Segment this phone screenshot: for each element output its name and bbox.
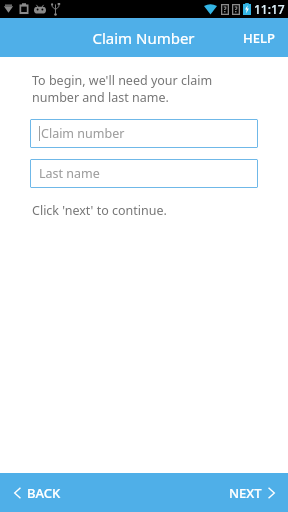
staticText: Last name — [39, 165, 100, 182]
button[interactable]: Claim number — [30, 119, 258, 148]
staticText: HELP — [243, 29, 275, 47]
staticText: BACK — [27, 484, 61, 502]
staticText: Claim Number — [92, 28, 195, 48]
button[interactable]: BACK — [0, 475, 75, 511]
staticText: Claim number — [41, 125, 125, 142]
staticText: 11:17 — [254, 1, 285, 17]
staticText: Click 'next' to continue. — [32, 202, 167, 219]
staticText: NEXT — [229, 484, 262, 502]
button[interactable]: Last name — [30, 159, 258, 188]
button[interactable]: HELP — [230, 21, 288, 55]
staticText: To begin, we'll need your claim number a… — [32, 72, 213, 106]
button[interactable]: NEXT — [216, 475, 288, 511]
